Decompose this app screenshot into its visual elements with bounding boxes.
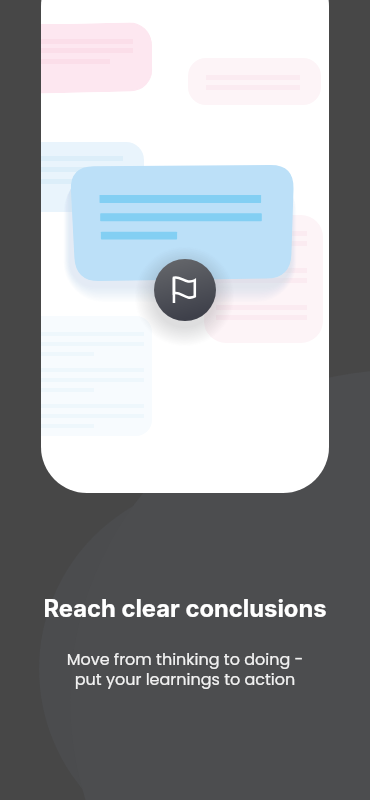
staticText: Reach clear conclusions: [0, 594, 370, 623]
staticText: Move from thinking to doing - put your l…: [0, 648, 370, 690]
button[interactable]: Flag: [154, 259, 216, 321]
